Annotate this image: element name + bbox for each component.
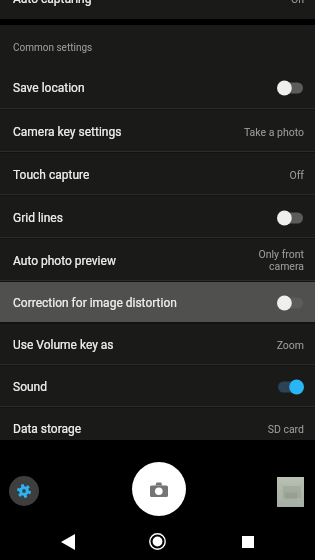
button[interactable]: Settings bbox=[9, 476, 39, 506]
staticText: Auto capturing bbox=[13, 0, 92, 6]
staticText: Use Volume key as bbox=[13, 338, 114, 352]
button[interactable]: Data storage bbox=[0, 408, 315, 450]
staticText: Touch capture bbox=[13, 168, 90, 182]
staticText: Save location bbox=[13, 81, 85, 95]
button[interactable]: Shutter bbox=[132, 462, 186, 516]
staticText: Common settings bbox=[13, 42, 93, 54]
button[interactable]: Use Volume key as bbox=[0, 324, 315, 366]
staticText: Grid lines bbox=[13, 211, 63, 225]
staticText: Sound bbox=[13, 380, 47, 394]
staticText: Data storage bbox=[13, 422, 82, 436]
staticText: Auto photo preview bbox=[13, 254, 116, 268]
staticText: Only front camera bbox=[258, 248, 304, 273]
button[interactable]: Correction for image distortion bbox=[0, 282, 315, 324]
button[interactable]: Auto capturing bbox=[0, 0, 315, 19]
staticText: Off bbox=[289, 169, 304, 181]
button[interactable]: Touch capture bbox=[0, 153, 315, 196]
button[interactable]: Home bbox=[140, 524, 175, 559]
button[interactable]: Grid lines bbox=[0, 196, 315, 239]
staticText: Take a photo bbox=[243, 126, 304, 138]
button[interactable]: Save location bbox=[0, 66, 315, 110]
button[interactable]: Gallery bbox=[277, 477, 304, 507]
button[interactable]: Back bbox=[50, 524, 85, 559]
staticText: SD card bbox=[267, 423, 304, 435]
staticText: Zoom bbox=[276, 339, 304, 351]
button[interactable]: Sound bbox=[0, 366, 315, 408]
staticText: Camera key settings bbox=[13, 125, 122, 139]
staticText: On bbox=[290, 0, 304, 5]
button[interactable]: Recents bbox=[230, 524, 265, 559]
button[interactable]: Auto photo preview bbox=[0, 239, 315, 282]
staticText: Correction for image distortion bbox=[13, 296, 177, 310]
button[interactable]: Camera key settings bbox=[0, 110, 315, 153]
